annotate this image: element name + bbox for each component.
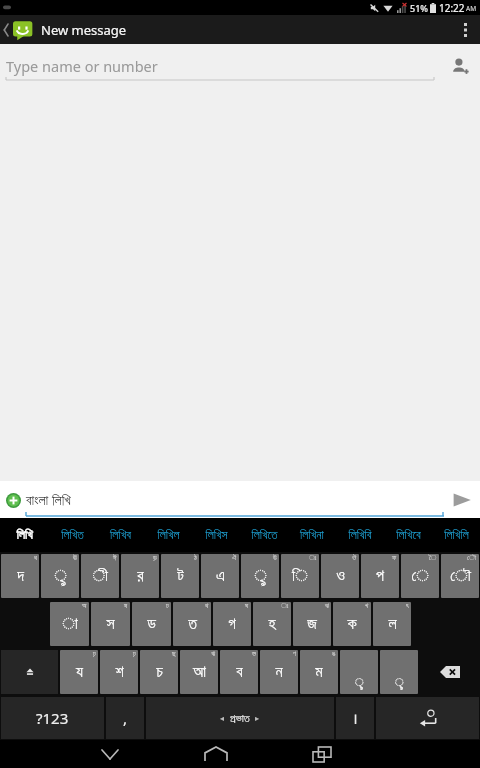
staticText: লিখি	[16, 529, 33, 541]
button[interactable]: লিখিতে	[240, 518, 288, 552]
staticText: ও	[336, 568, 345, 584]
staticText: হ	[268, 616, 276, 632]
staticText: ঝ	[325, 602, 329, 609]
button[interactable]: Home	[192, 740, 240, 768]
button[interactable]: ঠ	[161, 554, 199, 598]
button[interactable]: Type name or number	[6, 51, 434, 81]
button[interactable]: ঈ	[81, 554, 119, 598]
staticText: 12:22	[439, 1, 465, 15]
staticText: লিখিতে	[251, 529, 278, 541]
button[interactable]: থ	[173, 602, 211, 646]
button[interactable]: ?123	[1, 697, 104, 739]
staticText: ঊ	[73, 554, 77, 561]
staticText: লিখিস	[205, 529, 228, 541]
staticText: প	[376, 568, 384, 584]
button[interactable]: ণ	[260, 650, 298, 694]
staticText: ে	[411, 568, 429, 584]
staticText: ৌ	[467, 554, 477, 561]
staticText: ৢ	[54, 568, 67, 584]
staticText: ▸	[255, 714, 260, 723]
button[interactable]: Shift	[1, 650, 58, 694]
staticText: ন	[275, 664, 283, 680]
button[interactable]: উ	[241, 554, 279, 598]
button[interactable]: ঐ	[201, 554, 239, 598]
button[interactable]: ঝ	[293, 602, 331, 646]
button[interactable]: Recent apps	[298, 740, 346, 768]
staticText: Type name or number	[6, 56, 158, 76]
button[interactable]: ঔ	[321, 554, 359, 598]
button[interactable]: লিখিল	[144, 518, 192, 552]
button[interactable]: Space	[146, 697, 334, 739]
staticText: প্রভাত	[230, 713, 250, 724]
button[interactable]: ঋ	[180, 650, 218, 694]
button[interactable]: লিখিনা	[288, 518, 336, 552]
button[interactable]: লিখিবি	[336, 518, 384, 552]
button[interactable]: ঘ	[213, 602, 251, 646]
button[interactable]: ৢ	[380, 650, 418, 694]
staticText: ট	[177, 568, 184, 584]
staticText: ল	[388, 616, 397, 632]
button[interactable]: ৈ	[401, 554, 439, 598]
staticText: ভ	[252, 650, 256, 657]
staticText: া	[62, 616, 78, 632]
staticText: ছ	[172, 650, 176, 657]
button[interactable]: ঃ	[253, 602, 291, 646]
staticText: লিখিত	[61, 529, 84, 541]
staticText: ম	[315, 664, 323, 680]
button[interactable]: Enter	[376, 697, 479, 739]
staticText: New message	[41, 21, 127, 39]
button[interactable]: ঢ	[132, 602, 171, 646]
button[interactable]: Navigate up	[0, 15, 127, 44]
button[interactable]: ষ	[91, 602, 130, 646]
staticText: ৢ	[355, 677, 364, 688]
staticText: এ	[216, 568, 225, 584]
staticText: ড়	[153, 554, 157, 561]
button[interactable]: লিখিত	[48, 518, 96, 552]
staticText: ঔ	[352, 554, 357, 561]
button[interactable]: ঊ	[41, 554, 79, 598]
button[interactable]: ঢ়	[60, 650, 98, 694]
button[interactable]: খ	[333, 602, 371, 646]
staticText: অ	[82, 602, 87, 609]
button[interactable]: Add attachment	[0, 487, 26, 513]
staticText: ◂	[220, 714, 225, 723]
button[interactable]: ড়	[121, 554, 159, 598]
staticText: লিখিব	[110, 529, 131, 541]
button[interactable]: ,	[106, 697, 144, 739]
button[interactable]: More options	[450, 15, 480, 44]
button[interactable]: বাংলা লিখি	[26, 481, 444, 518]
button[interactable]: ভ	[220, 650, 258, 694]
staticText: ঃ	[281, 602, 289, 609]
staticText: ঐ	[232, 554, 237, 561]
button[interactable]: Send	[444, 481, 480, 518]
button[interactable]: ৢ	[340, 650, 378, 694]
button[interactable]: Back	[86, 740, 134, 768]
button[interactable]: লিখিব	[96, 518, 144, 552]
staticText: ত	[188, 616, 197, 632]
button[interactable]: ৎ	[373, 602, 411, 646]
staticText: থ	[205, 602, 209, 609]
button[interactable]: ধ	[1, 554, 39, 598]
staticText: খ	[365, 602, 369, 609]
button[interactable]: লিখিবে	[384, 518, 432, 552]
staticText: ক	[347, 616, 357, 632]
button[interactable]: Backspace	[420, 649, 479, 695]
staticText: ।	[352, 708, 358, 728]
button[interactable]: ।	[336, 697, 374, 739]
button[interactable]: লিখি	[0, 518, 48, 552]
staticText: গ	[228, 616, 236, 632]
button[interactable]: ফ	[361, 554, 399, 598]
staticText: শ	[115, 664, 124, 680]
button[interactable]: ঃ	[281, 554, 319, 598]
button[interactable]: লিখিস	[192, 518, 240, 552]
staticText: ঙ	[332, 650, 336, 657]
button[interactable]: ঙ	[300, 650, 338, 694]
button[interactable]: ছ	[140, 650, 178, 694]
button[interactable]: ঢ়	[100, 650, 138, 694]
staticText: লিখিনা	[300, 529, 324, 541]
button[interactable]: ৌ	[441, 554, 479, 598]
staticText: বাংলা লিখি	[26, 490, 71, 509]
button[interactable]: অ	[50, 602, 89, 646]
button[interactable]: লিখিলি	[432, 518, 480, 552]
button[interactable]: Add recipient from contacts	[440, 46, 480, 86]
